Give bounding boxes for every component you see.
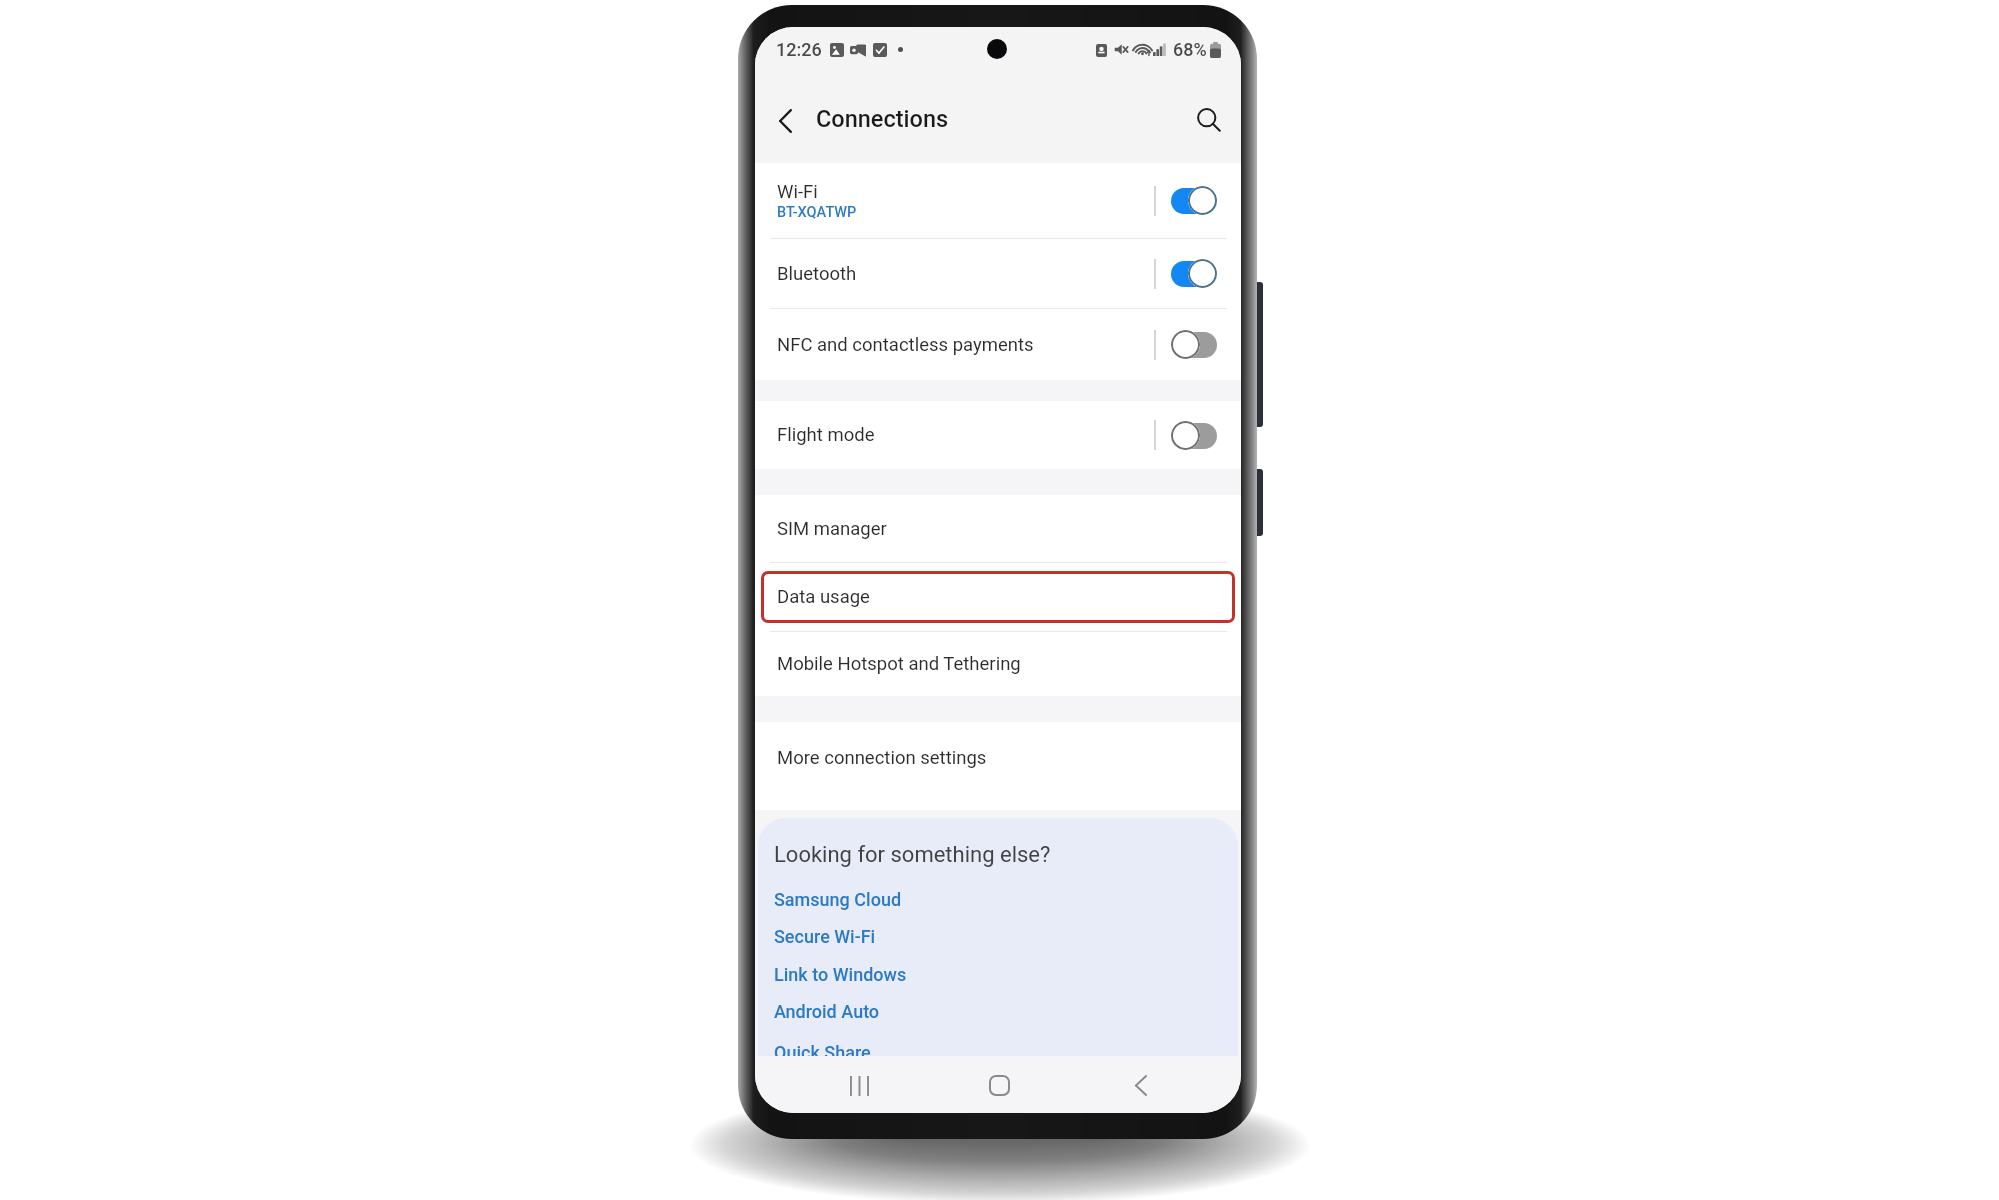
button[interactable]: Secure Wi-Fi	[774, 925, 876, 948]
staticText: BT-XQATWP	[777, 204, 857, 221]
staticText: Quick Share	[774, 1042, 871, 1059]
staticText: Android Auto	[774, 1001, 880, 1022]
button[interactable]: Mobile Hotspot and Tethering	[755, 632, 1241, 696]
staticText: SIM manager	[777, 518, 887, 540]
staticText: Data usage	[777, 586, 870, 608]
button[interactable]: Recent apps	[837, 1063, 882, 1108]
button[interactable]: Android Auto	[774, 1000, 880, 1023]
staticText: Bluetooth	[777, 263, 857, 285]
staticText: Wi-Fi	[777, 181, 818, 203]
staticText: Link to Windows	[774, 964, 907, 985]
staticText: 68%	[1173, 39, 1207, 60]
button[interactable]: SIM manager	[755, 495, 1241, 562]
staticText: Connections	[816, 105, 949, 133]
button[interactable]: Bluetooth	[755, 239, 1241, 308]
staticText: Mobile Hotspot and Tethering	[777, 653, 1021, 675]
staticText: Flight mode	[777, 424, 875, 446]
staticText: NFC and contactless payments	[777, 334, 1034, 356]
button[interactable]: Turn on	[1171, 421, 1217, 450]
button[interactable]: Search	[1189, 100, 1229, 140]
button[interactable]: NFC and contactless payments	[755, 309, 1241, 380]
button[interactable]: More connection settings	[755, 722, 1241, 810]
button[interactable]: Home	[977, 1063, 1022, 1108]
staticText: 12:26	[776, 39, 822, 60]
button[interactable]: Back	[764, 101, 806, 141]
staticText: More connection settings	[777, 747, 987, 769]
staticText: Samsung Cloud	[774, 889, 902, 910]
button[interactable]: Back	[1118, 1063, 1163, 1108]
button[interactable]: Quick Share	[774, 1041, 871, 1059]
button[interactable]: Wi-Fi	[755, 163, 1241, 238]
button[interactable]: Turn off	[1171, 259, 1217, 288]
button[interactable]: Turn on	[1171, 330, 1217, 359]
button[interactable]: Data usage	[755, 563, 1241, 631]
staticText: Secure Wi-Fi	[774, 926, 876, 947]
staticText: Looking for something else?	[774, 842, 1051, 868]
button[interactable]: Link to Windows	[774, 963, 907, 986]
button[interactable]: Turn off	[1171, 186, 1217, 215]
button[interactable]: Flight mode	[755, 401, 1241, 469]
button[interactable]: Samsung Cloud	[774, 888, 902, 911]
